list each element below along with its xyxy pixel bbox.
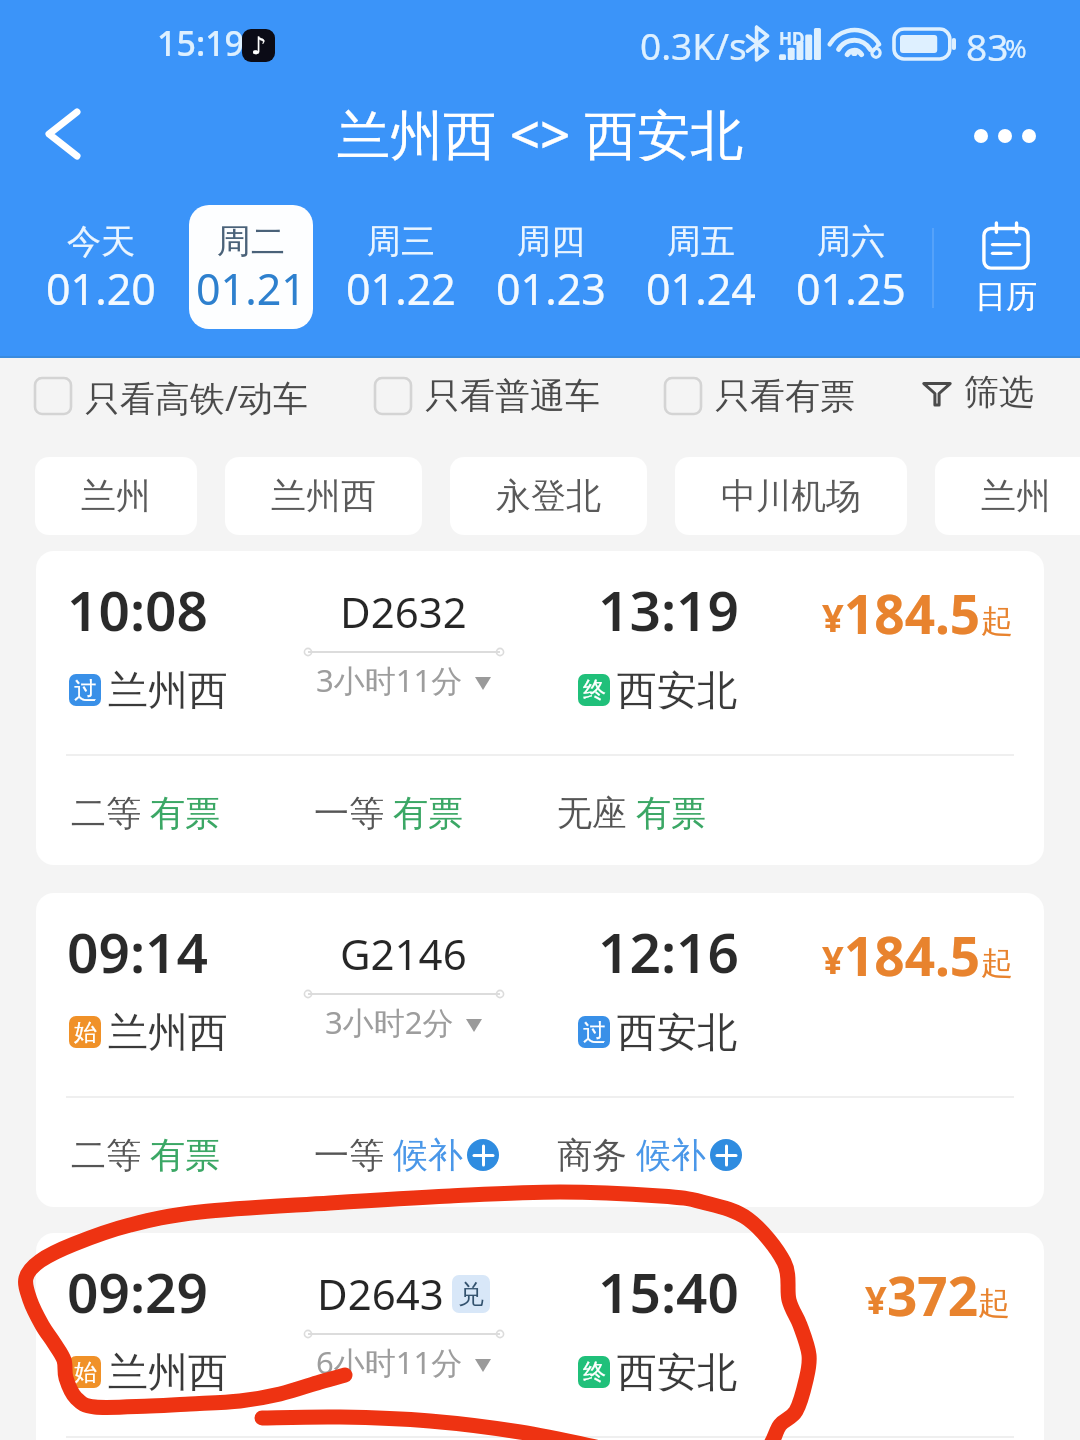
staticText: 3小时11分 (316, 659, 463, 701)
staticText: 周六 (817, 220, 885, 263)
staticText: 6小时11分 (316, 1341, 463, 1383)
staticText: 15:19 (157, 20, 245, 66)
button[interactable] (36, 1233, 1044, 1440)
staticText: G2146 (340, 925, 467, 982)
staticText: 01.24 (646, 259, 756, 318)
staticText: 候补 (393, 1133, 463, 1177)
staticText: 只看有票 (715, 374, 855, 418)
staticText: 09:29 (67, 1254, 209, 1329)
staticText: 有票 (150, 1133, 220, 1177)
button[interactable]: More options (958, 97, 1052, 175)
staticText: 兰州西 <> 西安北 (337, 97, 744, 169)
staticText: 184.5 (844, 919, 981, 991)
button[interactable]: 周三 (339, 205, 463, 329)
staticText: 0.3K/s (640, 20, 747, 70)
staticText: 中川机场 (721, 474, 861, 518)
button[interactable] (36, 551, 1044, 865)
staticText: 15:40 (598, 1254, 740, 1329)
staticText: 筛选 (964, 370, 1034, 414)
staticText: 日历 (975, 277, 1037, 316)
button[interactable]: 周五 (639, 205, 763, 329)
staticText: 起 (981, 601, 1010, 641)
button[interactable]: 周六 (789, 205, 913, 329)
staticText: D2643 (317, 1265, 444, 1322)
button[interactable]: 永登北 (450, 457, 647, 535)
staticText: 13:19 (598, 572, 740, 647)
staticText: 无座 (557, 791, 627, 835)
button[interactable]: 兰州 (35, 457, 197, 535)
staticText: 始 (74, 1018, 97, 1047)
staticText: 01.25 (796, 259, 906, 318)
staticText: 兰州西 (108, 1007, 228, 1057)
staticText: 起 (978, 1283, 1010, 1323)
staticText: 西安北 (617, 1007, 737, 1057)
staticText: ¥ (865, 1273, 887, 1325)
staticText: 过 (74, 676, 97, 705)
button[interactable]: 只看高铁/动车 (35, 374, 309, 418)
staticText: 兰州西 (271, 474, 376, 518)
staticText: 起 (981, 943, 1010, 983)
button[interactable]: Calendar (940, 223, 1072, 347)
staticText: 西安北 (617, 665, 737, 715)
staticText: 有票 (150, 791, 220, 835)
button[interactable]: 一等 (314, 788, 463, 838)
staticText: 今天 (67, 220, 135, 263)
button[interactable]: 一等 (314, 1130, 499, 1180)
staticText: 3小时2分 (325, 1001, 454, 1043)
staticText: 01.23 (496, 259, 606, 318)
button[interactable]: Back (24, 95, 102, 173)
staticText: HD (779, 27, 805, 50)
staticText: 01.22 (346, 259, 456, 318)
button[interactable]: 只看有票 (665, 374, 855, 418)
staticText: 兰州西 (108, 665, 228, 715)
staticText: 83 (966, 21, 1009, 71)
staticText: 372 (887, 1259, 978, 1331)
button[interactable] (36, 893, 1044, 1207)
button[interactable]: 今天 (39, 205, 163, 329)
staticText: 过 (583, 1018, 606, 1047)
staticText: 有票 (393, 791, 463, 835)
staticText: 二等 (71, 1133, 141, 1177)
staticText: 周二 (217, 220, 285, 263)
button[interactable]: 二等 (71, 1130, 220, 1180)
staticText: 终 (583, 676, 606, 705)
staticText: 永登北 (496, 474, 601, 518)
button[interactable]: 周四 (489, 205, 613, 329)
staticText: 兰州 (81, 474, 151, 518)
staticText: ¥ (822, 933, 844, 985)
staticText: 商务 (557, 1133, 627, 1177)
staticText: 兰州西 (108, 1347, 228, 1397)
staticText: % (1005, 30, 1027, 65)
staticText: 周四 (517, 220, 585, 263)
button[interactable]: 周二 (189, 205, 313, 329)
staticText: 184.5 (844, 577, 981, 649)
staticText: 12:16 (598, 914, 740, 989)
button[interactable]: 筛选 (922, 370, 1034, 414)
staticText: 兰州 (981, 474, 1051, 518)
button[interactable]: 二等 (71, 788, 220, 838)
staticText: 01.21 (196, 259, 306, 318)
staticText: 始 (74, 1358, 97, 1387)
staticText: 有票 (636, 791, 706, 835)
button[interactable]: 只看普通车 (375, 374, 600, 418)
staticText: 一等 (314, 1133, 384, 1177)
staticText: 周三 (367, 220, 435, 263)
button[interactable]: 兰州西 (225, 457, 422, 535)
staticText: 只看普通车 (425, 374, 600, 418)
button[interactable]: 中川机场 (675, 457, 907, 535)
staticText: 只看高铁/动车 (85, 374, 309, 418)
staticText: 兑 (458, 1278, 484, 1311)
staticText: 09:14 (67, 914, 209, 989)
staticText: 终 (583, 1358, 606, 1387)
staticText: 西安北 (617, 1347, 737, 1397)
staticText: 01.20 (46, 259, 156, 318)
staticText: 10:08 (67, 572, 209, 647)
button[interactable]: 兰州 (935, 457, 1080, 535)
staticText: 一等 (314, 791, 384, 835)
button[interactable]: 商务 (557, 1130, 742, 1180)
staticText: ¥ (822, 591, 844, 643)
staticText: 候补 (636, 1133, 706, 1177)
staticText: D2632 (340, 583, 467, 640)
staticText: 二等 (71, 791, 141, 835)
button[interactable]: 无座 (557, 788, 706, 838)
